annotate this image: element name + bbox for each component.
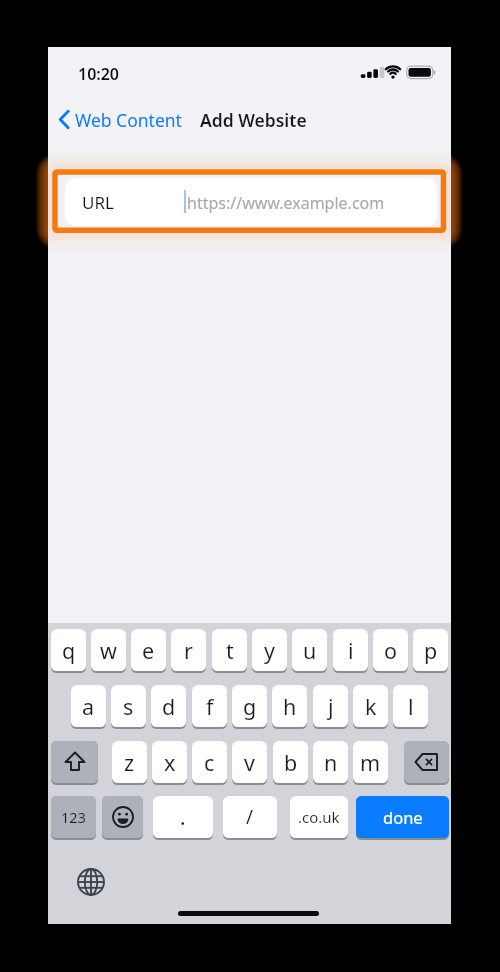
staticText: 10:20 (78, 63, 120, 85)
staticText: h (283, 692, 297, 721)
staticText: m (360, 748, 381, 777)
staticText: p (424, 636, 438, 665)
button[interactable]: d (151, 685, 186, 727)
staticText: URL (82, 191, 114, 214)
staticText: .co.uk (298, 807, 340, 827)
button[interactable]: k (353, 685, 388, 727)
button[interactable]: Web Content (54, 105, 229, 133)
staticText: i (348, 636, 354, 665)
button[interactable]: i (333, 629, 368, 671)
staticText: . (180, 804, 186, 831)
button[interactable] (102, 796, 143, 838)
button[interactable]: t (212, 629, 247, 671)
staticText: w (100, 636, 117, 665)
staticText: t (226, 636, 234, 665)
staticText: l (408, 692, 414, 721)
button[interactable]: l (393, 685, 428, 727)
staticText: Web Content (75, 108, 182, 132)
button[interactable]: .co.uk (290, 796, 348, 838)
staticText: s (123, 692, 134, 721)
staticText: r (184, 636, 193, 665)
staticText: o (384, 636, 398, 665)
button[interactable]: a (71, 685, 106, 727)
button[interactable]: URL (65, 178, 437, 226)
button[interactable]: / (223, 796, 277, 838)
staticText: y (264, 636, 275, 665)
staticText: f (206, 692, 214, 721)
button[interactable]: v (232, 741, 267, 783)
button[interactable]: . (153, 796, 213, 838)
staticText: Add Website (200, 108, 307, 132)
button[interactable]: c (192, 741, 227, 783)
button[interactable]: done (356, 796, 449, 838)
staticText: d (162, 692, 176, 721)
staticText: a (82, 692, 95, 721)
staticText: n (324, 748, 338, 777)
staticText: https://www.example.com (187, 192, 385, 214)
button[interactable]: h (272, 685, 307, 727)
staticText: c (204, 748, 215, 777)
staticText: 123 (61, 807, 86, 827)
button[interactable]: g (232, 685, 267, 727)
staticText: z (124, 748, 135, 777)
button[interactable] (76, 867, 106, 897)
staticText: g (243, 692, 257, 721)
staticText: done (383, 806, 423, 828)
button[interactable]: y (252, 629, 287, 671)
button[interactable]: u (292, 629, 327, 671)
staticText: k (365, 692, 377, 721)
staticText: j (328, 692, 334, 721)
button[interactable]: r (171, 629, 206, 671)
staticText: u (303, 636, 317, 665)
button[interactable]: p (413, 629, 448, 671)
button[interactable] (404, 741, 449, 783)
button[interactable]: w (91, 629, 126, 671)
button[interactable]: o (373, 629, 408, 671)
staticText: q (62, 636, 76, 665)
button[interactable]: f (192, 685, 227, 727)
button[interactable]: z (112, 741, 147, 783)
button[interactable]: j (313, 685, 348, 727)
button[interactable]: q (51, 629, 86, 671)
button[interactable]: 123 (51, 796, 96, 838)
button[interactable]: e (131, 629, 166, 671)
button[interactable]: x (152, 741, 187, 783)
staticText: e (142, 636, 155, 665)
staticText: / (246, 804, 254, 830)
button[interactable]: n (313, 741, 348, 783)
button[interactable] (51, 741, 98, 783)
staticText: v (244, 748, 255, 777)
staticText: b (284, 748, 298, 777)
button[interactable]: s (111, 685, 146, 727)
button[interactable]: m (353, 741, 388, 783)
staticText: x (164, 748, 176, 777)
button[interactable]: b (273, 741, 308, 783)
